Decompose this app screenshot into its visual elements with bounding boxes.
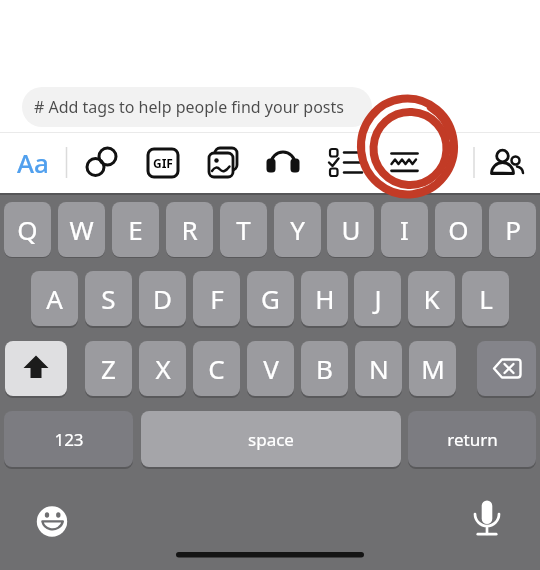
button[interactable]: W	[58, 202, 105, 257]
staticText: A	[46, 281, 63, 316]
button[interactable]: H	[301, 271, 348, 326]
staticText: space	[248, 428, 294, 451]
staticText: J	[374, 281, 382, 316]
button[interactable]: # Add tags to help people find your post…	[22, 87, 372, 127]
staticText: 123	[54, 428, 84, 451]
staticText: S	[101, 281, 116, 316]
staticText: N	[369, 351, 389, 386]
button[interactable]: Y	[274, 202, 321, 257]
staticText: M	[421, 351, 445, 386]
staticText: D	[153, 281, 172, 316]
button[interactable]: S	[85, 271, 132, 326]
button[interactable]	[321, 140, 365, 184]
staticText: I	[400, 212, 409, 247]
button[interactable]	[201, 140, 245, 184]
staticText: E	[128, 212, 143, 247]
staticText: Z	[101, 351, 116, 386]
staticText: GIF	[153, 155, 173, 171]
staticText: Q	[17, 212, 38, 247]
button[interactable]: G	[247, 271, 294, 326]
staticText: P	[505, 212, 521, 247]
button[interactable]: Q	[4, 202, 51, 257]
button[interactable]: X	[139, 341, 186, 396]
button[interactable]: N	[355, 341, 402, 396]
staticText: H	[315, 281, 335, 316]
staticText: Y	[290, 212, 305, 247]
staticText: # Add tags to help people find your post…	[34, 96, 344, 118]
button[interactable]: O	[435, 202, 482, 257]
button[interactable]: M	[409, 341, 456, 396]
button[interactable]: C	[193, 341, 240, 396]
button[interactable]: J	[354, 271, 401, 326]
button[interactable]: 123	[4, 411, 133, 467]
staticText: K	[423, 281, 440, 316]
button[interactable]: Z	[85, 341, 132, 396]
staticText: C	[208, 351, 225, 386]
staticText: F	[210, 281, 224, 316]
staticText: R	[181, 212, 198, 247]
staticText: U	[341, 212, 361, 247]
staticText: G	[261, 281, 280, 316]
button[interactable]	[261, 140, 305, 184]
button[interactable]: D	[139, 271, 186, 326]
button[interactable]: I	[381, 202, 428, 257]
staticText: B	[316, 351, 333, 386]
button[interactable]: P	[489, 202, 536, 257]
staticText: W	[69, 212, 94, 247]
button[interactable]: L	[462, 271, 509, 326]
button[interactable]: A	[31, 271, 78, 326]
button[interactable]: B	[301, 341, 348, 396]
button[interactable]: GIF	[147, 148, 179, 178]
staticText: L	[479, 281, 493, 316]
button[interactable]: R	[166, 202, 213, 257]
staticText: X	[155, 351, 171, 386]
button[interactable]: K	[408, 271, 455, 326]
button[interactable]	[382, 140, 426, 184]
button[interactable]	[5, 341, 67, 396]
button[interactable]	[79, 140, 123, 184]
button[interactable]: T	[220, 202, 267, 257]
button[interactable]: return	[408, 411, 536, 467]
staticText: Aa	[17, 145, 49, 180]
staticText: return	[447, 428, 498, 451]
button[interactable]	[477, 341, 536, 396]
staticText: O	[448, 212, 469, 247]
button[interactable]: F	[193, 271, 240, 326]
button[interactable]	[485, 140, 529, 184]
button[interactable]	[467, 503, 507, 543]
staticText: T	[236, 212, 251, 247]
button[interactable]	[32, 503, 72, 543]
button[interactable]: V	[247, 341, 294, 396]
staticText: V	[263, 351, 279, 386]
button[interactable]: E	[112, 202, 159, 257]
button[interactable]: Aa	[9, 140, 57, 184]
button[interactable]: U	[327, 202, 374, 257]
button[interactable]: space	[141, 411, 401, 467]
